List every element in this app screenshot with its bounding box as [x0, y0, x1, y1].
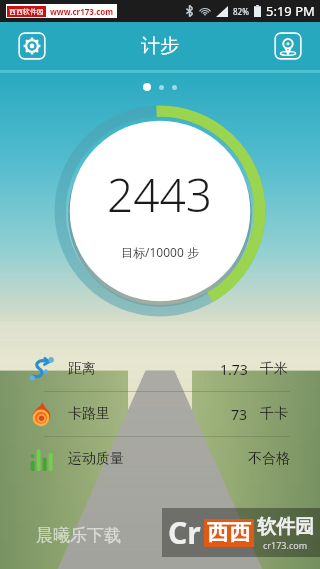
button[interactable]: 距离 [30, 347, 290, 391]
button[interactable]: Settings [18, 32, 46, 60]
staticText: 5:19 PM [266, 2, 315, 20]
staticText: 晨曦乐下载 [36, 525, 121, 546]
staticText: 西西软件园 [9, 7, 44, 16]
staticText: 2443 [107, 163, 213, 226]
staticText: 运动质量 [68, 450, 124, 468]
button[interactable]: Location [274, 32, 302, 60]
staticText: 千米 [260, 360, 288, 378]
staticText: 卡路里 [68, 405, 110, 423]
staticText: 1.73 [220, 360, 248, 379]
staticText: 73 [231, 405, 248, 424]
button[interactable]: 运动质量 [30, 437, 290, 481]
staticText: 目标/10000 步 [121, 244, 199, 260]
button[interactable]: 2443 [52, 103, 268, 319]
staticText: 千卡 [260, 405, 288, 423]
button[interactable]: 卡路里 [30, 392, 290, 436]
staticText: 82% [233, 6, 249, 17]
staticText: Cr [168, 512, 201, 553]
staticText: 不合格 [248, 450, 290, 468]
staticText: 计步 [141, 34, 179, 58]
staticText: 西西 [207, 519, 251, 547]
staticText: cr173.com [263, 539, 308, 551]
staticText: www.cr173.com [50, 6, 114, 17]
staticText: 软件园 [257, 515, 314, 539]
staticText: 距离 [68, 360, 96, 378]
